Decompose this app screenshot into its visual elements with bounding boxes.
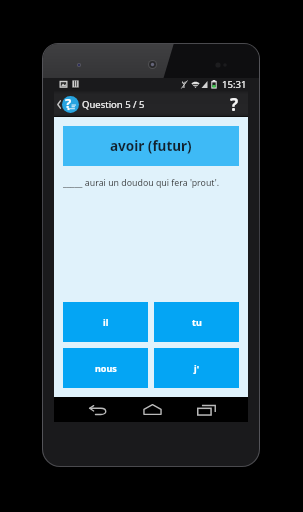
button[interactable]: Back bbox=[71, 397, 125, 422]
staticText: ? bbox=[65, 94, 72, 111]
button[interactable]: Home bbox=[125, 397, 179, 422]
staticText: Question 5 / 5 bbox=[82, 98, 145, 111]
staticText: il bbox=[103, 316, 109, 328]
staticText: ? bbox=[230, 93, 239, 116]
button[interactable]: Recents bbox=[179, 397, 233, 422]
staticText: 15:31 bbox=[222, 78, 247, 91]
staticText: nous bbox=[95, 362, 117, 374]
staticText: avoir (futur) bbox=[110, 137, 192, 155]
button[interactable]: Help bbox=[220, 91, 248, 117]
button[interactable]: il bbox=[63, 302, 148, 342]
button[interactable]: nous bbox=[63, 348, 148, 388]
staticText: j' bbox=[194, 362, 200, 374]
button[interactable]: tu bbox=[154, 302, 239, 342]
staticText: _____ aurai un doudou qui fera 'prout'. bbox=[63, 177, 220, 189]
staticText: tu bbox=[192, 316, 202, 328]
button[interactable]: j' bbox=[154, 348, 239, 388]
button[interactable]: Navigate up bbox=[54, 91, 79, 117]
